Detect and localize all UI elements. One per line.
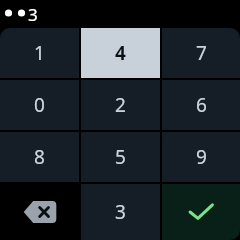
- staticText: 7: [196, 40, 207, 66]
- button[interactable]: 5: [81, 132, 160, 182]
- button[interactable]: 2: [81, 80, 160, 130]
- button[interactable]: 8: [0, 132, 79, 182]
- button[interactable]: 0: [0, 80, 79, 130]
- staticText: 2: [115, 92, 126, 118]
- button[interactable]: 1: [0, 28, 79, 78]
- button[interactable]: 4: [81, 28, 160, 78]
- staticText: 4: [115, 40, 126, 66]
- button[interactable]: Confirm: [162, 184, 240, 240]
- staticText: 0: [34, 92, 45, 118]
- button[interactable]: 9: [162, 132, 240, 182]
- staticText: 3: [28, 3, 38, 26]
- staticText: 1: [34, 40, 45, 66]
- staticText: 5: [115, 144, 126, 170]
- button[interactable]: Backspace: [0, 184, 79, 240]
- button[interactable]: 3: [81, 184, 160, 240]
- button[interactable]: 7: [162, 28, 240, 78]
- staticText: 3: [115, 199, 126, 225]
- staticText: 6: [196, 92, 207, 118]
- button[interactable]: 6: [162, 80, 240, 130]
- staticText: 9: [196, 144, 207, 170]
- staticText: 8: [34, 144, 45, 170]
